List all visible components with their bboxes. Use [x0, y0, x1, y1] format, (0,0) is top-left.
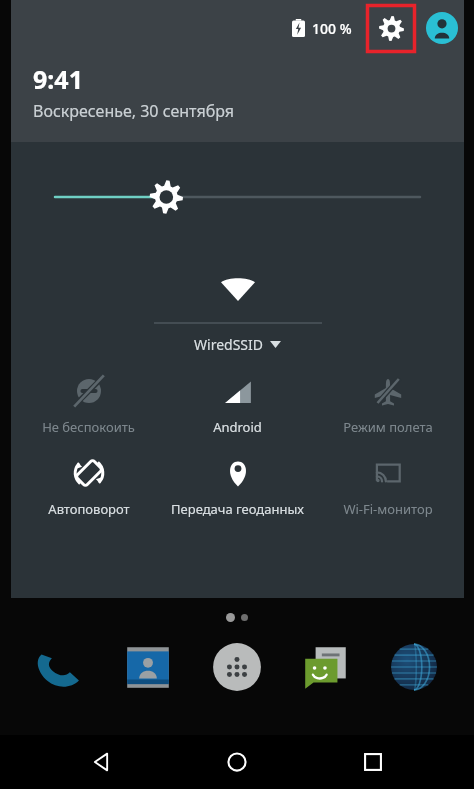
- button[interactable]: Back: [66, 735, 136, 789]
- button[interactable]: Phone: [31, 638, 89, 696]
- staticText: 100 %: [312, 19, 352, 38]
- staticText: Автоповорот: [48, 500, 130, 518]
- button[interactable]: Contacts: [119, 638, 177, 696]
- button[interactable]: Messages: [297, 638, 355, 696]
- button[interactable]: Не беспокоить: [16, 376, 161, 436]
- button[interactable]: Brightness: [11, 175, 464, 219]
- button[interactable]: Wi-Fi: [206, 257, 270, 321]
- staticText: Передача геоданных: [171, 500, 304, 518]
- button[interactable]: WiredSSID: [194, 335, 281, 354]
- button[interactable]: Автоповорот: [16, 458, 161, 518]
- staticText: Режим полета: [343, 418, 433, 436]
- button[interactable]: Recents: [338, 735, 408, 789]
- button[interactable]: Wi-Fi-монитор: [315, 458, 460, 518]
- staticText: Воскресенье, 30 сентября: [33, 100, 235, 122]
- staticText: Не беспокоить: [42, 418, 135, 436]
- button[interactable]: Android: [165, 376, 310, 436]
- button[interactable]: Settings: [366, 4, 416, 53]
- button[interactable]: User profile: [426, 12, 458, 44]
- staticText: Android: [213, 418, 262, 436]
- button[interactable]: Home: [202, 735, 272, 789]
- button[interactable]: Browser: [385, 638, 443, 696]
- button[interactable]: All apps: [208, 638, 266, 696]
- button[interactable]: Передача геоданных: [165, 458, 310, 518]
- staticText: WiredSSID: [194, 335, 263, 354]
- staticText: Wi-Fi-монитор: [343, 500, 433, 518]
- button[interactable]: Режим полета: [315, 376, 460, 436]
- staticText: 9:41: [33, 62, 83, 96]
